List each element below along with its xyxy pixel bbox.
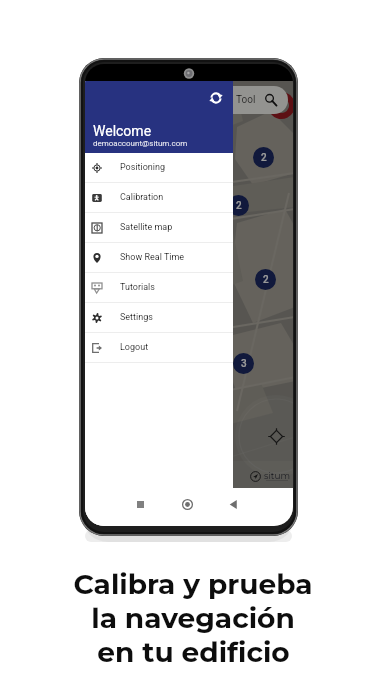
button[interactable]: Tutorials xyxy=(85,273,233,302)
button[interactable]: Tool xyxy=(118,86,288,114)
staticText: Welcome xyxy=(93,123,152,139)
staticText: 2 xyxy=(261,152,267,164)
button[interactable]: Home xyxy=(172,489,203,520)
staticText: Tutorials xyxy=(120,282,155,293)
button[interactable]: Settings xyxy=(85,303,233,332)
button[interactable]: Refresh xyxy=(206,88,226,108)
button[interactable]: Center on my position xyxy=(235,395,293,477)
button[interactable]: Back xyxy=(218,489,249,520)
button[interactable]: Calibration xyxy=(85,183,233,212)
button[interactable]: Show Real Time xyxy=(85,243,233,272)
staticText: en tu edificio xyxy=(97,635,290,669)
staticText: Tool xyxy=(236,94,256,106)
button[interactable]: Marker 2 xyxy=(253,147,274,168)
button[interactable]: Marker 2 xyxy=(255,269,276,290)
button[interactable]: Marker 2 xyxy=(228,195,249,216)
staticText: Calibration xyxy=(120,192,164,203)
staticText: 2 xyxy=(263,274,269,286)
staticText: Logout xyxy=(120,342,149,353)
staticText: Positioning xyxy=(120,162,166,173)
other: Search xyxy=(265,94,277,106)
staticText: situm xyxy=(264,470,290,481)
staticText: 2 xyxy=(236,200,242,212)
staticText: demoaccount@situm.com xyxy=(93,139,188,148)
staticText: Calibra y prueba xyxy=(73,567,313,601)
staticText: Satellite map xyxy=(120,222,173,233)
staticText: la navegación xyxy=(91,601,295,635)
staticText: 3 xyxy=(241,358,247,370)
staticText: Show Real Time xyxy=(120,252,185,263)
button[interactable]: Positioning xyxy=(85,153,233,182)
button[interactable]: Marker 3 xyxy=(233,353,254,374)
staticText: Settings xyxy=(120,312,153,323)
button[interactable]: Logout xyxy=(85,333,233,362)
button[interactable]: Satellite map xyxy=(85,213,233,242)
button[interactable]: Recents xyxy=(125,489,156,520)
